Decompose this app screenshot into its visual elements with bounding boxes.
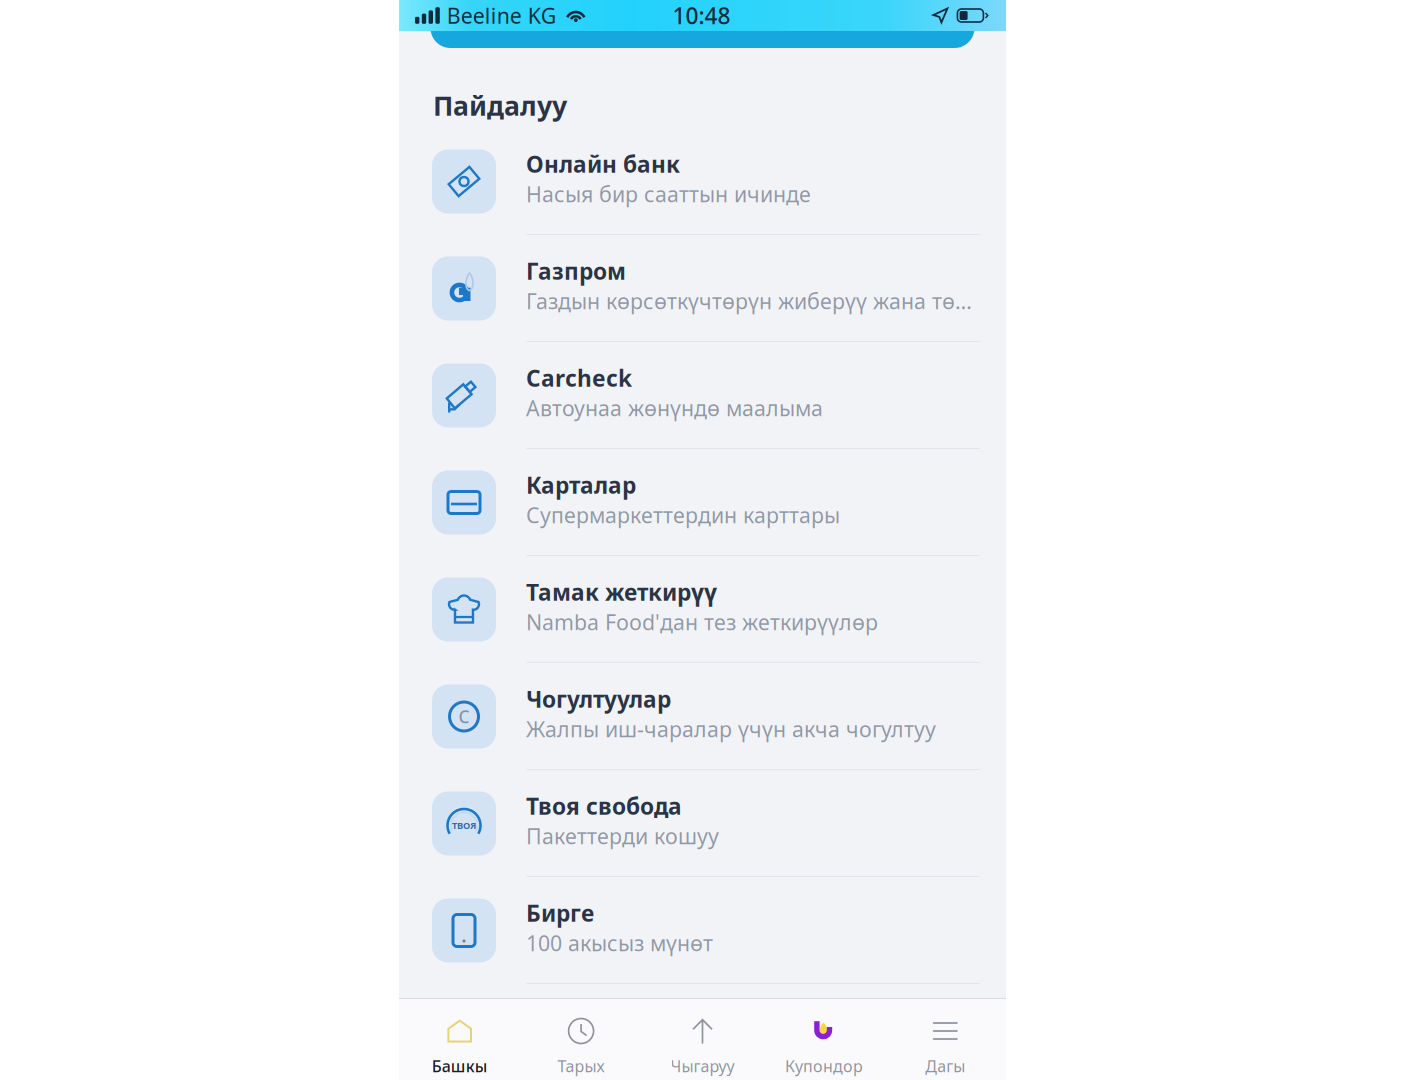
- button[interactable]: Онлайн банк: [399, 128, 1006, 235]
- staticText: Carcheck: [526, 363, 632, 393]
- button[interactable]: Чыгаруу: [642, 998, 763, 1080]
- staticText: Супермаркеттердин карттары: [526, 501, 840, 529]
- button[interactable]: ТВОЯ: [399, 770, 1006, 877]
- staticText: Автоунаа жөнүндө маалыма: [526, 394, 823, 422]
- staticText: Namba Food'дан тез жеткирүүлөр: [526, 608, 878, 636]
- staticText: Жалпы иш-чаралар үчүн акча чогултуу: [526, 715, 936, 743]
- staticText: C: [458, 705, 469, 728]
- staticText: ТВОЯ: [452, 819, 476, 832]
- staticText: Газпром: [526, 256, 626, 286]
- staticText: Башкы: [432, 1055, 488, 1077]
- staticText: 10:48: [672, 0, 730, 30]
- staticText: Beeline KG: [447, 1, 557, 30]
- button[interactable]: Башкы: [399, 998, 520, 1080]
- button[interactable]: Дагы: [885, 998, 1006, 1080]
- button[interactable]: Бирге: [399, 877, 1006, 984]
- button[interactable]: Газпром: [399, 235, 1006, 342]
- staticText: Газдын көрсөткүчтөрүн жиберүү жана тө…: [526, 287, 972, 315]
- staticText: Пайдалуу: [433, 88, 567, 123]
- staticText: Тамак жеткирүү: [526, 577, 717, 607]
- button[interactable]: Тамак жеткирүү: [399, 556, 1006, 663]
- staticText: Онлайн банк: [526, 149, 680, 179]
- staticText: Чогултуулар: [526, 684, 671, 714]
- staticText: Карталар: [526, 470, 636, 500]
- button[interactable]: Карталар: [399, 449, 1006, 556]
- staticText: Чыгаруу: [670, 1055, 734, 1077]
- staticText: Бирге: [526, 898, 594, 928]
- button[interactable]: Купондор: [763, 998, 885, 1080]
- staticText: Дагы: [925, 1055, 965, 1077]
- staticText: Пакеттерди кошуу: [526, 822, 719, 850]
- staticText: Твоя свобода: [526, 791, 682, 821]
- staticText: Тарых: [558, 1055, 605, 1077]
- staticText: Купондор: [785, 1055, 863, 1077]
- staticText: Насыя бир сааттын ичинде: [526, 180, 811, 208]
- button[interactable]: Carcheck: [399, 342, 1006, 449]
- button[interactable]: C: [399, 663, 1006, 770]
- button[interactable]: Тарых: [520, 998, 642, 1080]
- staticText: 100 акысыз мүнөт: [526, 929, 713, 957]
